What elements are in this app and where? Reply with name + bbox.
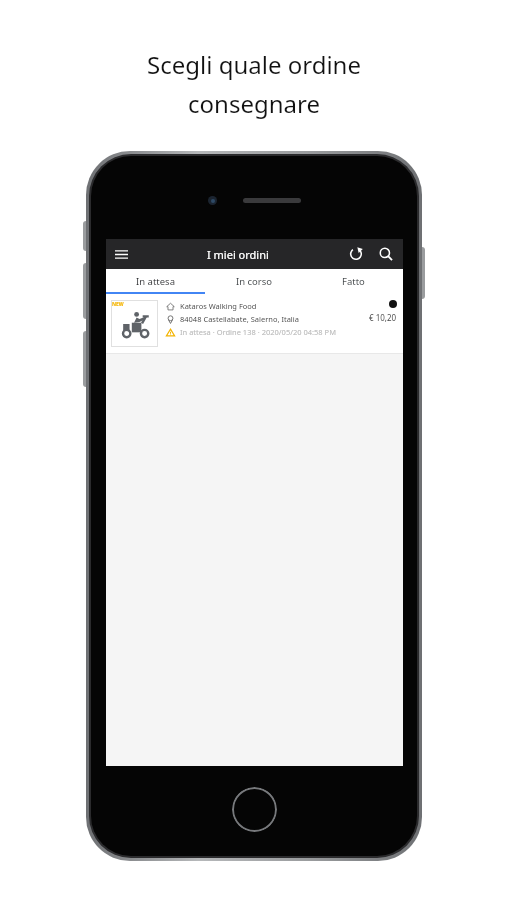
button[interactable]: Fatto bbox=[304, 269, 403, 294]
button[interactable]: Refresh bbox=[341, 239, 371, 269]
staticText: Kataros Walking Food bbox=[180, 301, 257, 311]
staticText: € 10,20 bbox=[369, 312, 397, 323]
button[interactable]: NEW bbox=[106, 294, 403, 354]
staticText: Scegli quale ordine bbox=[147, 48, 361, 81]
button[interactable]: Search bbox=[371, 239, 401, 269]
staticText: I miei ordini bbox=[207, 247, 269, 262]
staticText: NEW bbox=[112, 301, 124, 308]
staticText: In corso bbox=[236, 275, 273, 288]
staticText: 84048 Castellabate, Salerno, Italia bbox=[180, 314, 299, 324]
staticText: In attesa · Ordine 138 · 2020/05/20 04:5… bbox=[180, 327, 336, 337]
button[interactable]: In attesa bbox=[106, 269, 205, 294]
staticText: In attesa bbox=[136, 275, 175, 288]
staticText: Fatto bbox=[342, 275, 365, 288]
button[interactable]: Menu bbox=[106, 239, 136, 269]
button[interactable]: In corso bbox=[205, 269, 304, 294]
staticText: consegnare bbox=[188, 87, 320, 120]
